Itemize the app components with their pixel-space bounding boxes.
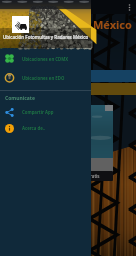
staticText: Acerca de.. (22, 125, 46, 131)
button[interactable]: Acerca de.. (0, 120, 91, 136)
button[interactable]: Compartir App (0, 104, 91, 120)
staticText: INFRACCIÓN (EDO) (30, 86, 76, 93)
button[interactable]: INFRACCIÓN (EDO) (0, 83, 136, 95)
staticText: Compartir App (22, 109, 54, 115)
button[interactable]: More options (123, 1, 135, 13)
button[interactable]: Instalar gratis (57, 171, 113, 181)
staticText: Ubicación Fotomultas y Radares México (3, 34, 89, 40)
staticText: Comunicate (5, 95, 35, 102)
staticText: Ubicaciones en CDMX (22, 56, 69, 62)
staticText: Instalar gratis (70, 173, 100, 179)
button[interactable]: Ubicaciones en EDO (0, 68, 91, 87)
staticText: México (93, 17, 132, 32)
button[interactable]: UBICACIONES (CDMX) (0, 70, 136, 82)
staticText: Ubicaciones en EDO (22, 75, 65, 81)
button[interactable]: Ubicaciones en CDMX (0, 49, 91, 68)
staticText: UBICACIONES (CDMX) (30, 73, 83, 80)
